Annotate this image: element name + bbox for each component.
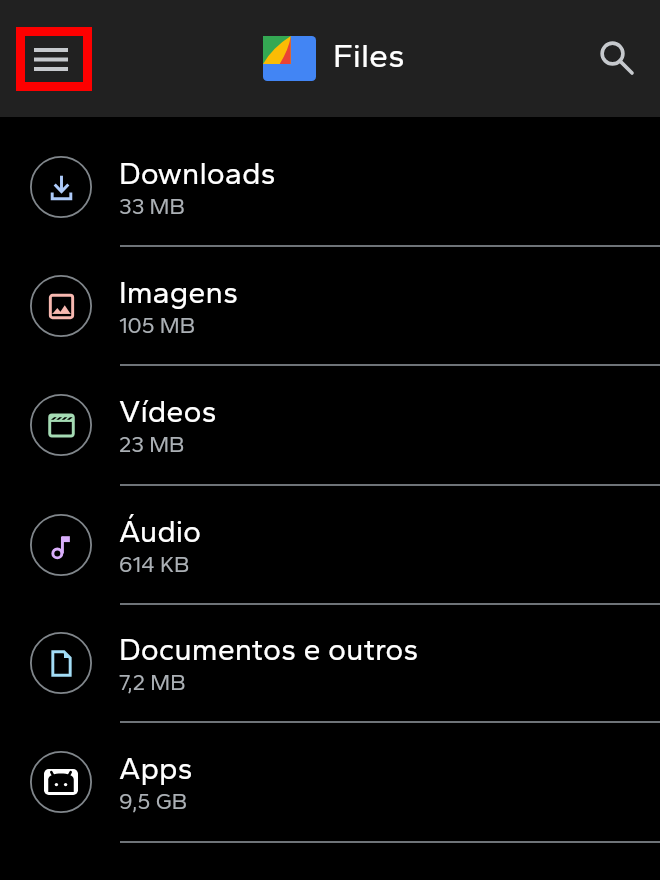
- staticText: Files: [333, 35, 405, 76]
- staticText: Áudio: [119, 513, 202, 550]
- button[interactable]: Apps: [0, 723, 660, 843]
- button[interactable]: Áudio: [0, 486, 660, 605]
- button[interactable]: Search: [588, 29, 646, 87]
- staticText: Vídeos: [119, 393, 217, 430]
- staticText: 105 MB: [119, 312, 195, 338]
- button[interactable]: Downloads: [0, 128, 660, 247]
- staticText: 7,2 MB: [119, 669, 186, 695]
- staticText: Imagens: [119, 274, 238, 311]
- button[interactable]: Imagens: [0, 247, 660, 366]
- staticText: 9,5 GB: [119, 788, 188, 814]
- staticText: Documentos e outros: [119, 631, 419, 668]
- button[interactable]: Menu: [16, 27, 92, 91]
- staticText: 614 KB: [119, 551, 190, 577]
- button[interactable]: Vídeos: [0, 366, 660, 486]
- button[interactable]: Documentos e outros: [0, 605, 660, 723]
- staticText: 23 MB: [119, 431, 185, 457]
- staticText: 33 MB: [119, 193, 185, 219]
- staticText: Downloads: [119, 155, 276, 192]
- staticText: Apps: [119, 750, 193, 787]
